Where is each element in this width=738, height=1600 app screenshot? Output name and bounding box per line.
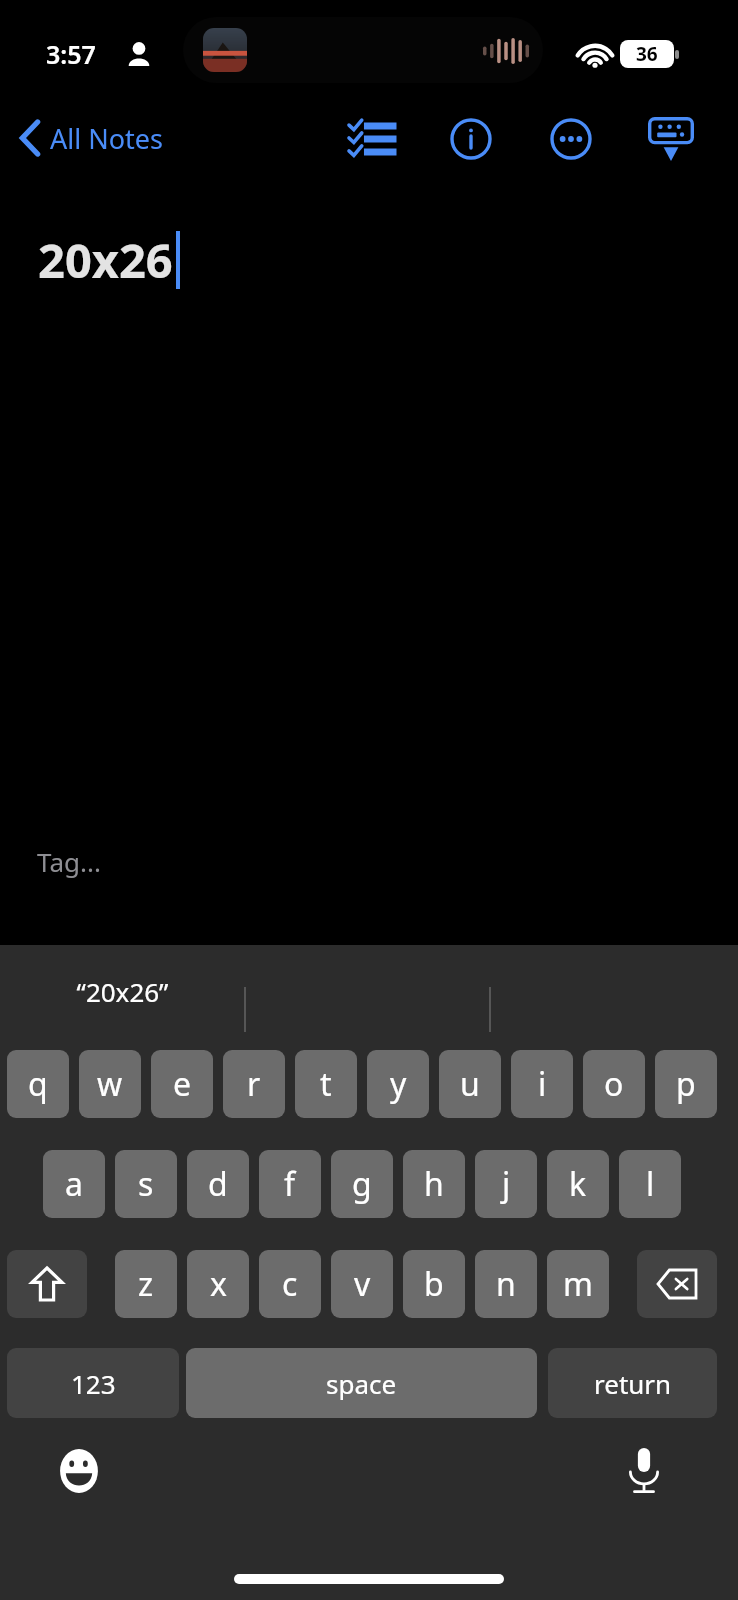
button[interactable]: y [367, 1050, 429, 1118]
button[interactable]: q [7, 1050, 69, 1118]
button[interactable]: More options [540, 110, 602, 168]
staticText: y [390, 1062, 407, 1106]
button[interactable]: Hide keyboard [640, 110, 702, 168]
staticText: a [65, 1162, 83, 1206]
button[interactable]: a [43, 1150, 105, 1218]
button[interactable]: t [295, 1050, 357, 1118]
button[interactable]: “20x26” [60, 974, 185, 1009]
button[interactable]: return [548, 1348, 717, 1418]
button[interactable]: d [187, 1150, 249, 1218]
staticText: s [138, 1162, 154, 1206]
staticText: t [320, 1062, 332, 1106]
button[interactable]: Dictation [613, 1440, 675, 1502]
button[interactable]: p [655, 1050, 717, 1118]
button[interactable]: Emoji [48, 1440, 110, 1502]
staticText: b [424, 1262, 444, 1306]
staticText: return [594, 1366, 672, 1401]
button[interactable]: Backspace [637, 1250, 717, 1318]
button[interactable]: e [151, 1050, 213, 1118]
button[interactable]: u [439, 1050, 501, 1118]
staticText: f [284, 1162, 296, 1206]
button[interactable]: l [619, 1150, 681, 1218]
button[interactable]: All Notes [8, 100, 266, 176]
staticText: z [138, 1262, 154, 1306]
button[interactable]: space [186, 1348, 537, 1418]
staticText: k [569, 1162, 587, 1206]
staticText: x [210, 1262, 227, 1306]
staticText: space [326, 1366, 397, 1401]
button[interactable]: z [115, 1250, 177, 1318]
button[interactable]: c [259, 1250, 321, 1318]
staticText: w [97, 1062, 123, 1106]
staticText: u [460, 1062, 480, 1106]
staticText: h [424, 1162, 444, 1206]
staticText: m [563, 1262, 593, 1306]
button[interactable]: h [403, 1150, 465, 1218]
button[interactable]: 123 [7, 1348, 179, 1418]
staticText: c [282, 1262, 298, 1306]
staticText: All Notes [50, 120, 163, 157]
button[interactable]: r [223, 1050, 285, 1118]
staticText: e [173, 1062, 192, 1106]
button[interactable]: f [259, 1150, 321, 1218]
staticText: g [352, 1162, 372, 1206]
button[interactable]: i [511, 1050, 573, 1118]
button[interactable]: j [475, 1150, 537, 1218]
button[interactable]: o [583, 1050, 645, 1118]
staticText: j [502, 1162, 511, 1206]
button[interactable]: b [403, 1250, 465, 1318]
staticText: l [646, 1162, 655, 1206]
staticText: r [247, 1062, 261, 1106]
staticText: 20x26 [38, 228, 173, 292]
button[interactable]: s [115, 1150, 177, 1218]
button[interactable]: Checklist [340, 110, 402, 168]
button[interactable]: m [547, 1250, 609, 1318]
button[interactable]: w [79, 1050, 141, 1118]
staticText: q [28, 1062, 48, 1106]
staticText: o [604, 1062, 624, 1106]
button[interactable]: Tag... [37, 844, 101, 879]
staticText: i [538, 1062, 547, 1106]
staticText: 3:57 [46, 37, 96, 71]
button[interactable]: n [475, 1250, 537, 1318]
staticText: p [676, 1062, 696, 1106]
button[interactable]: v [331, 1250, 393, 1318]
staticText: 36 [636, 41, 658, 67]
button[interactable]: k [547, 1150, 609, 1218]
button[interactable]: Info [440, 110, 502, 168]
staticText: n [496, 1262, 516, 1306]
staticText: d [208, 1162, 228, 1206]
button[interactable]: g [331, 1150, 393, 1218]
button[interactable]: Shift [7, 1250, 87, 1318]
button[interactable]: x [187, 1250, 249, 1318]
staticText: 123 [71, 1366, 116, 1401]
staticText: v [354, 1262, 371, 1306]
